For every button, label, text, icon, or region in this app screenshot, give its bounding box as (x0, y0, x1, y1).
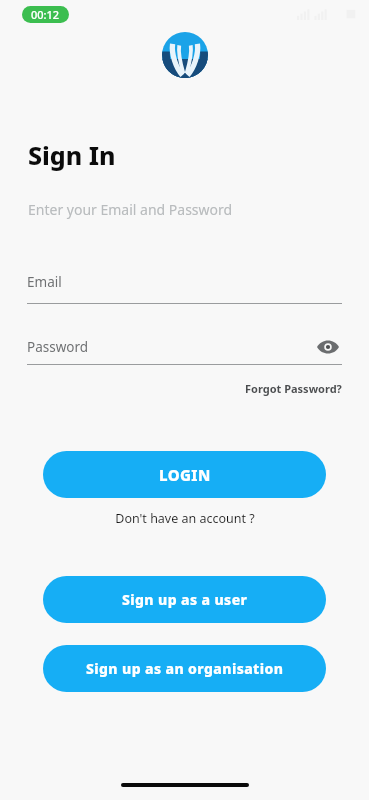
staticText: Sign In (28, 138, 116, 172)
staticText: 00:12 (31, 7, 60, 22)
staticText: Forgot Password? (245, 381, 342, 396)
button[interactable]: Don't have an account ? (115, 510, 255, 527)
staticText: Sign up as a user (122, 590, 248, 609)
button[interactable]: Password (27, 336, 342, 358)
button[interactable]: LOGIN (43, 451, 326, 498)
button[interactable]: Show password (314, 336, 342, 358)
staticText: LOGIN (159, 465, 211, 485)
staticText: Don't have an account ? (115, 510, 255, 527)
button[interactable]: Sign up as an organisation (43, 645, 326, 692)
staticText: Password (27, 338, 314, 356)
staticText: Sign up as an organisation (86, 659, 284, 678)
button[interactable]: Email (27, 273, 342, 291)
staticText: Email (27, 273, 62, 291)
button[interactable]: Forgot Password? (245, 381, 342, 396)
staticText: Enter your Email and Password (28, 200, 233, 219)
button[interactable]: Sign up as a user (43, 576, 326, 623)
